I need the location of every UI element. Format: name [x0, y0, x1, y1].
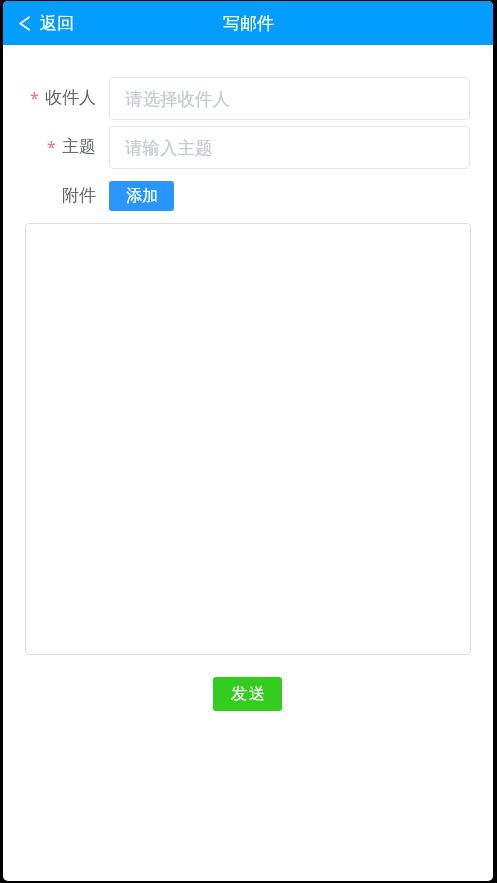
button[interactable]: 请选择收件人 [109, 77, 470, 120]
staticText: * [30, 87, 39, 109]
staticText: 添加 [126, 186, 158, 206]
staticText: 请选择收件人 [125, 88, 230, 110]
staticText: 主题 [62, 136, 96, 157]
button[interactable]: 邮件正文 [25, 223, 471, 655]
staticText: 附件 [62, 185, 96, 206]
button[interactable]: 返回 [15, 8, 78, 39]
button[interactable]: 添加 [109, 181, 174, 211]
button[interactable]: 发送 [213, 677, 282, 711]
staticText: * [47, 136, 56, 158]
staticText: 写邮件 [223, 13, 274, 34]
staticText: 请输入主题 [125, 137, 213, 159]
staticText: 收件人 [45, 87, 96, 108]
staticText: 发送 [230, 684, 266, 704]
button[interactable]: 请输入主题 [109, 126, 470, 169]
staticText: 返回 [40, 13, 74, 34]
